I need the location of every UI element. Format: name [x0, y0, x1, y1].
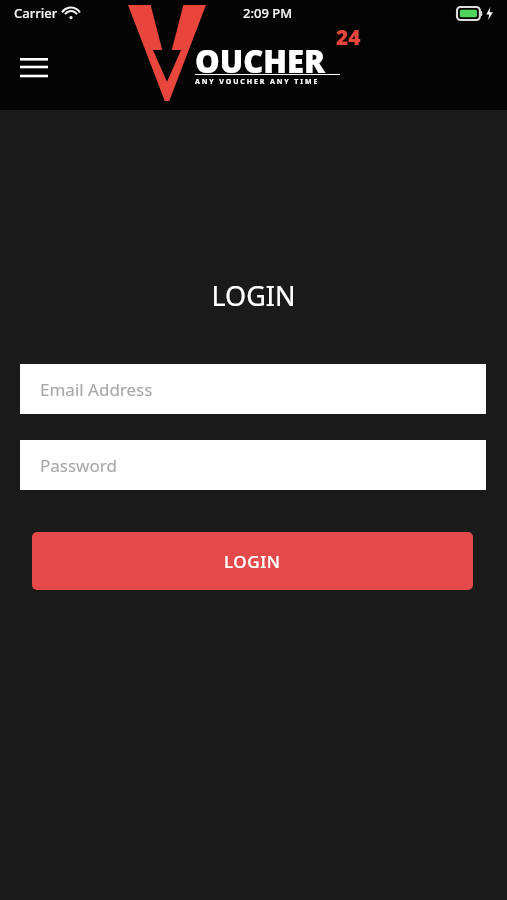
- staticText: ANY VOUCHER ANY TIME: [195, 77, 320, 87]
- button[interactable]: Open navigation menu: [12, 49, 56, 85]
- staticText: Password: [40, 454, 117, 477]
- staticText: Email Address: [40, 378, 153, 401]
- button[interactable]: Email Address: [20, 364, 486, 414]
- staticText: LOGIN: [224, 550, 281, 573]
- staticText: OUCHER: [195, 40, 326, 82]
- staticText: Carrier: [14, 4, 58, 22]
- staticText: 24: [336, 23, 361, 52]
- button[interactable]: Password: [20, 440, 486, 490]
- staticText: LOGIN: [0, 277, 507, 314]
- button[interactable]: LOGIN: [32, 532, 473, 590]
- staticText: 2:09 PM: [243, 4, 293, 22]
